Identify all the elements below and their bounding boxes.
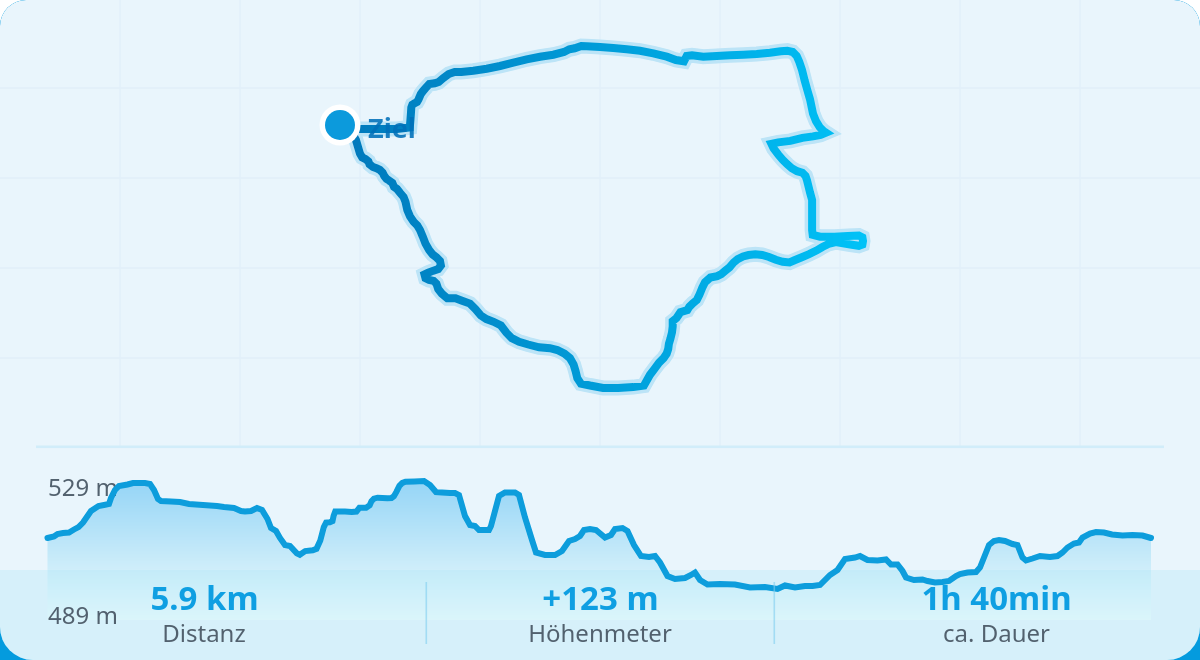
staticText: 5.9 km [150, 575, 259, 620]
button[interactable]: +123 m [408, 570, 792, 660]
staticText: 1h 40min [921, 575, 1072, 620]
staticText: 529 m [48, 470, 118, 503]
staticText: Ziel [368, 109, 416, 146]
staticText: 489 m [48, 598, 118, 631]
staticText: Distanz [162, 616, 246, 649]
button[interactable]: 1h 40min [792, 570, 1200, 660]
staticText: Höhenmeter [528, 616, 672, 649]
staticText: ca. Dauer [943, 616, 1050, 649]
staticText: +123 m [542, 575, 659, 620]
button[interactable]: 5.9 km [0, 570, 408, 660]
